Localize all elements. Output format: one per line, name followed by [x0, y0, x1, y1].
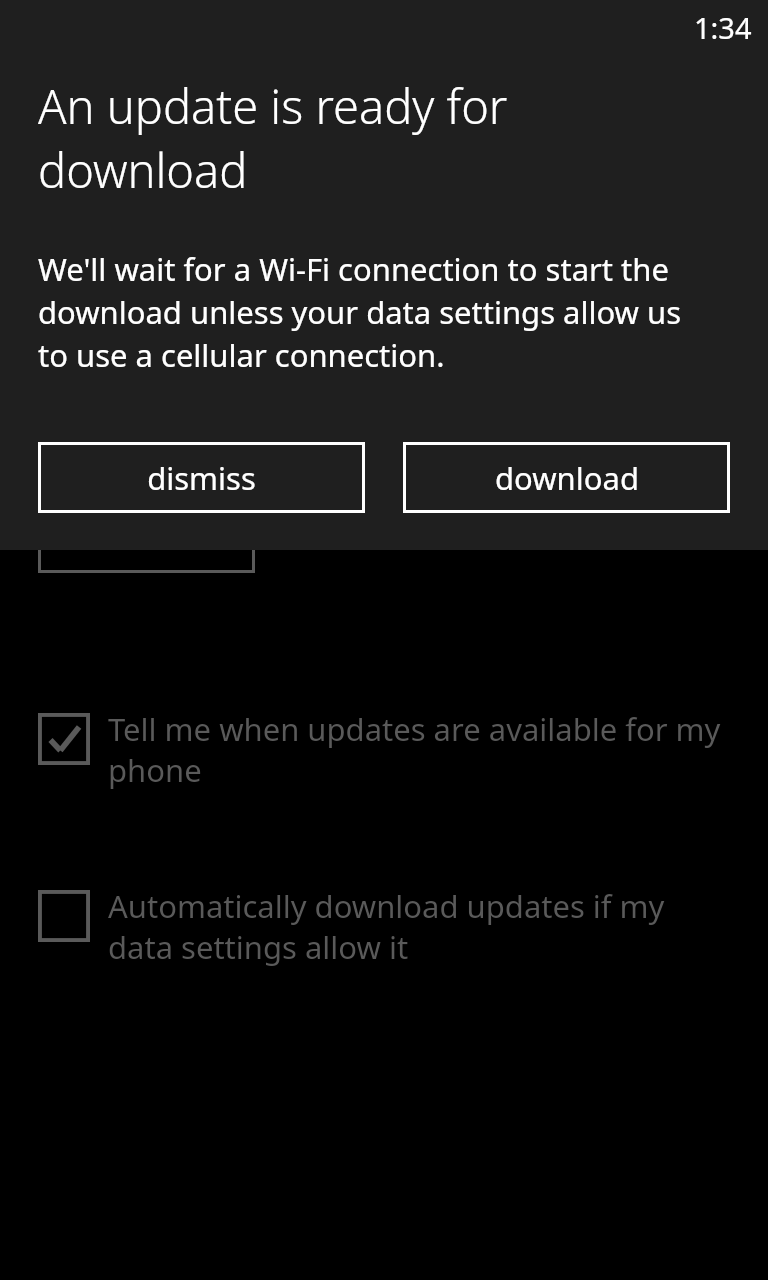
button[interactable]: Unchecked [38, 890, 730, 973]
staticText: Automatically download updates if my dat… [108, 885, 730, 968]
staticText: We'll wait for a Wi-Fi connection to sta… [38, 248, 684, 376]
button[interactable]: Checked [38, 713, 730, 796]
staticText: dismiss [147, 457, 256, 499]
other: Checked [38, 713, 90, 765]
button[interactable] [38, 502, 255, 573]
button[interactable]: dismiss [38, 442, 365, 513]
other: Unchecked [38, 890, 90, 942]
staticText: Tell me when updates are available for m… [108, 708, 730, 791]
button[interactable]: download [403, 442, 730, 513]
staticText: 1:34 [694, 8, 752, 47]
staticText: An update is ready for download [38, 74, 698, 202]
staticText: download [495, 457, 639, 499]
